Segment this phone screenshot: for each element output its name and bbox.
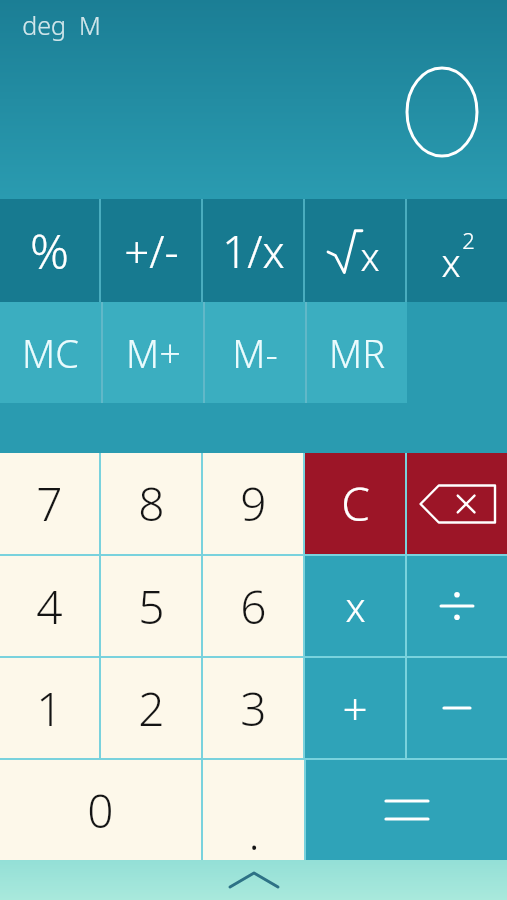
button[interactable]: Percent — [0, 199, 99, 302]
button[interactable]: MR — [307, 302, 407, 403]
button[interactable]: Plus minus — [101, 199, 201, 302]
button[interactable]: Square root — [305, 199, 405, 302]
staticText: 5 — [138, 575, 165, 638]
staticText: % — [30, 218, 69, 283]
button[interactable]: MC — [0, 302, 101, 403]
button[interactable]: 4 — [0, 556, 99, 656]
button[interactable]: 2 — [101, 658, 201, 758]
button[interactable]: Multiply — [305, 556, 405, 656]
staticText: . — [248, 801, 260, 864]
staticText: 7 — [36, 472, 63, 535]
button[interactable]: Divide — [407, 556, 507, 656]
staticText: x — [441, 236, 461, 288]
button[interactable]: . — [203, 760, 304, 860]
button[interactable]: Minus — [407, 658, 507, 758]
staticText: +/- — [124, 221, 179, 281]
button[interactable]: Plus — [305, 658, 405, 758]
button[interactable]: Equals — [306, 760, 507, 860]
staticText: 0 — [87, 779, 114, 842]
staticText: C — [341, 472, 370, 535]
staticText: M- — [232, 327, 278, 379]
button[interactable]: C — [305, 453, 405, 554]
staticText: 6 — [240, 575, 267, 638]
staticText: M+ — [126, 327, 181, 379]
button[interactable]: X squared — [407, 199, 507, 302]
staticText: 1 — [36, 677, 63, 740]
staticText: MR — [329, 327, 385, 379]
staticText: + — [342, 678, 368, 738]
staticText: 2 — [138, 677, 165, 740]
staticText: MC — [22, 327, 79, 379]
button[interactable]: 6 — [203, 556, 303, 656]
button[interactable]: 3 — [203, 658, 303, 758]
staticText: 8 — [138, 472, 165, 535]
button[interactable]: Backspace — [407, 453, 507, 554]
button[interactable]: 1 — [0, 658, 99, 758]
button[interactable]: 0 — [0, 760, 201, 860]
staticText: 2 — [462, 225, 475, 255]
staticText: 3 — [240, 677, 267, 740]
staticText: deg M — [22, 8, 101, 42]
button[interactable]: 5 — [101, 556, 201, 656]
button[interactable]: M- — [205, 302, 305, 403]
other: Expand panel — [230, 869, 278, 891]
button[interactable]: 7 — [0, 453, 99, 554]
button[interactable]: 8 — [101, 453, 201, 554]
staticText: x — [360, 230, 380, 282]
button[interactable]: M+ — [103, 302, 203, 403]
staticText: x — [345, 579, 366, 633]
staticText: 9 — [240, 472, 267, 535]
button[interactable]: Reciprocal — [203, 199, 303, 302]
button[interactable]: 9 — [203, 453, 303, 554]
staticText: 1/x — [222, 221, 285, 281]
staticText: 4 — [36, 575, 63, 638]
